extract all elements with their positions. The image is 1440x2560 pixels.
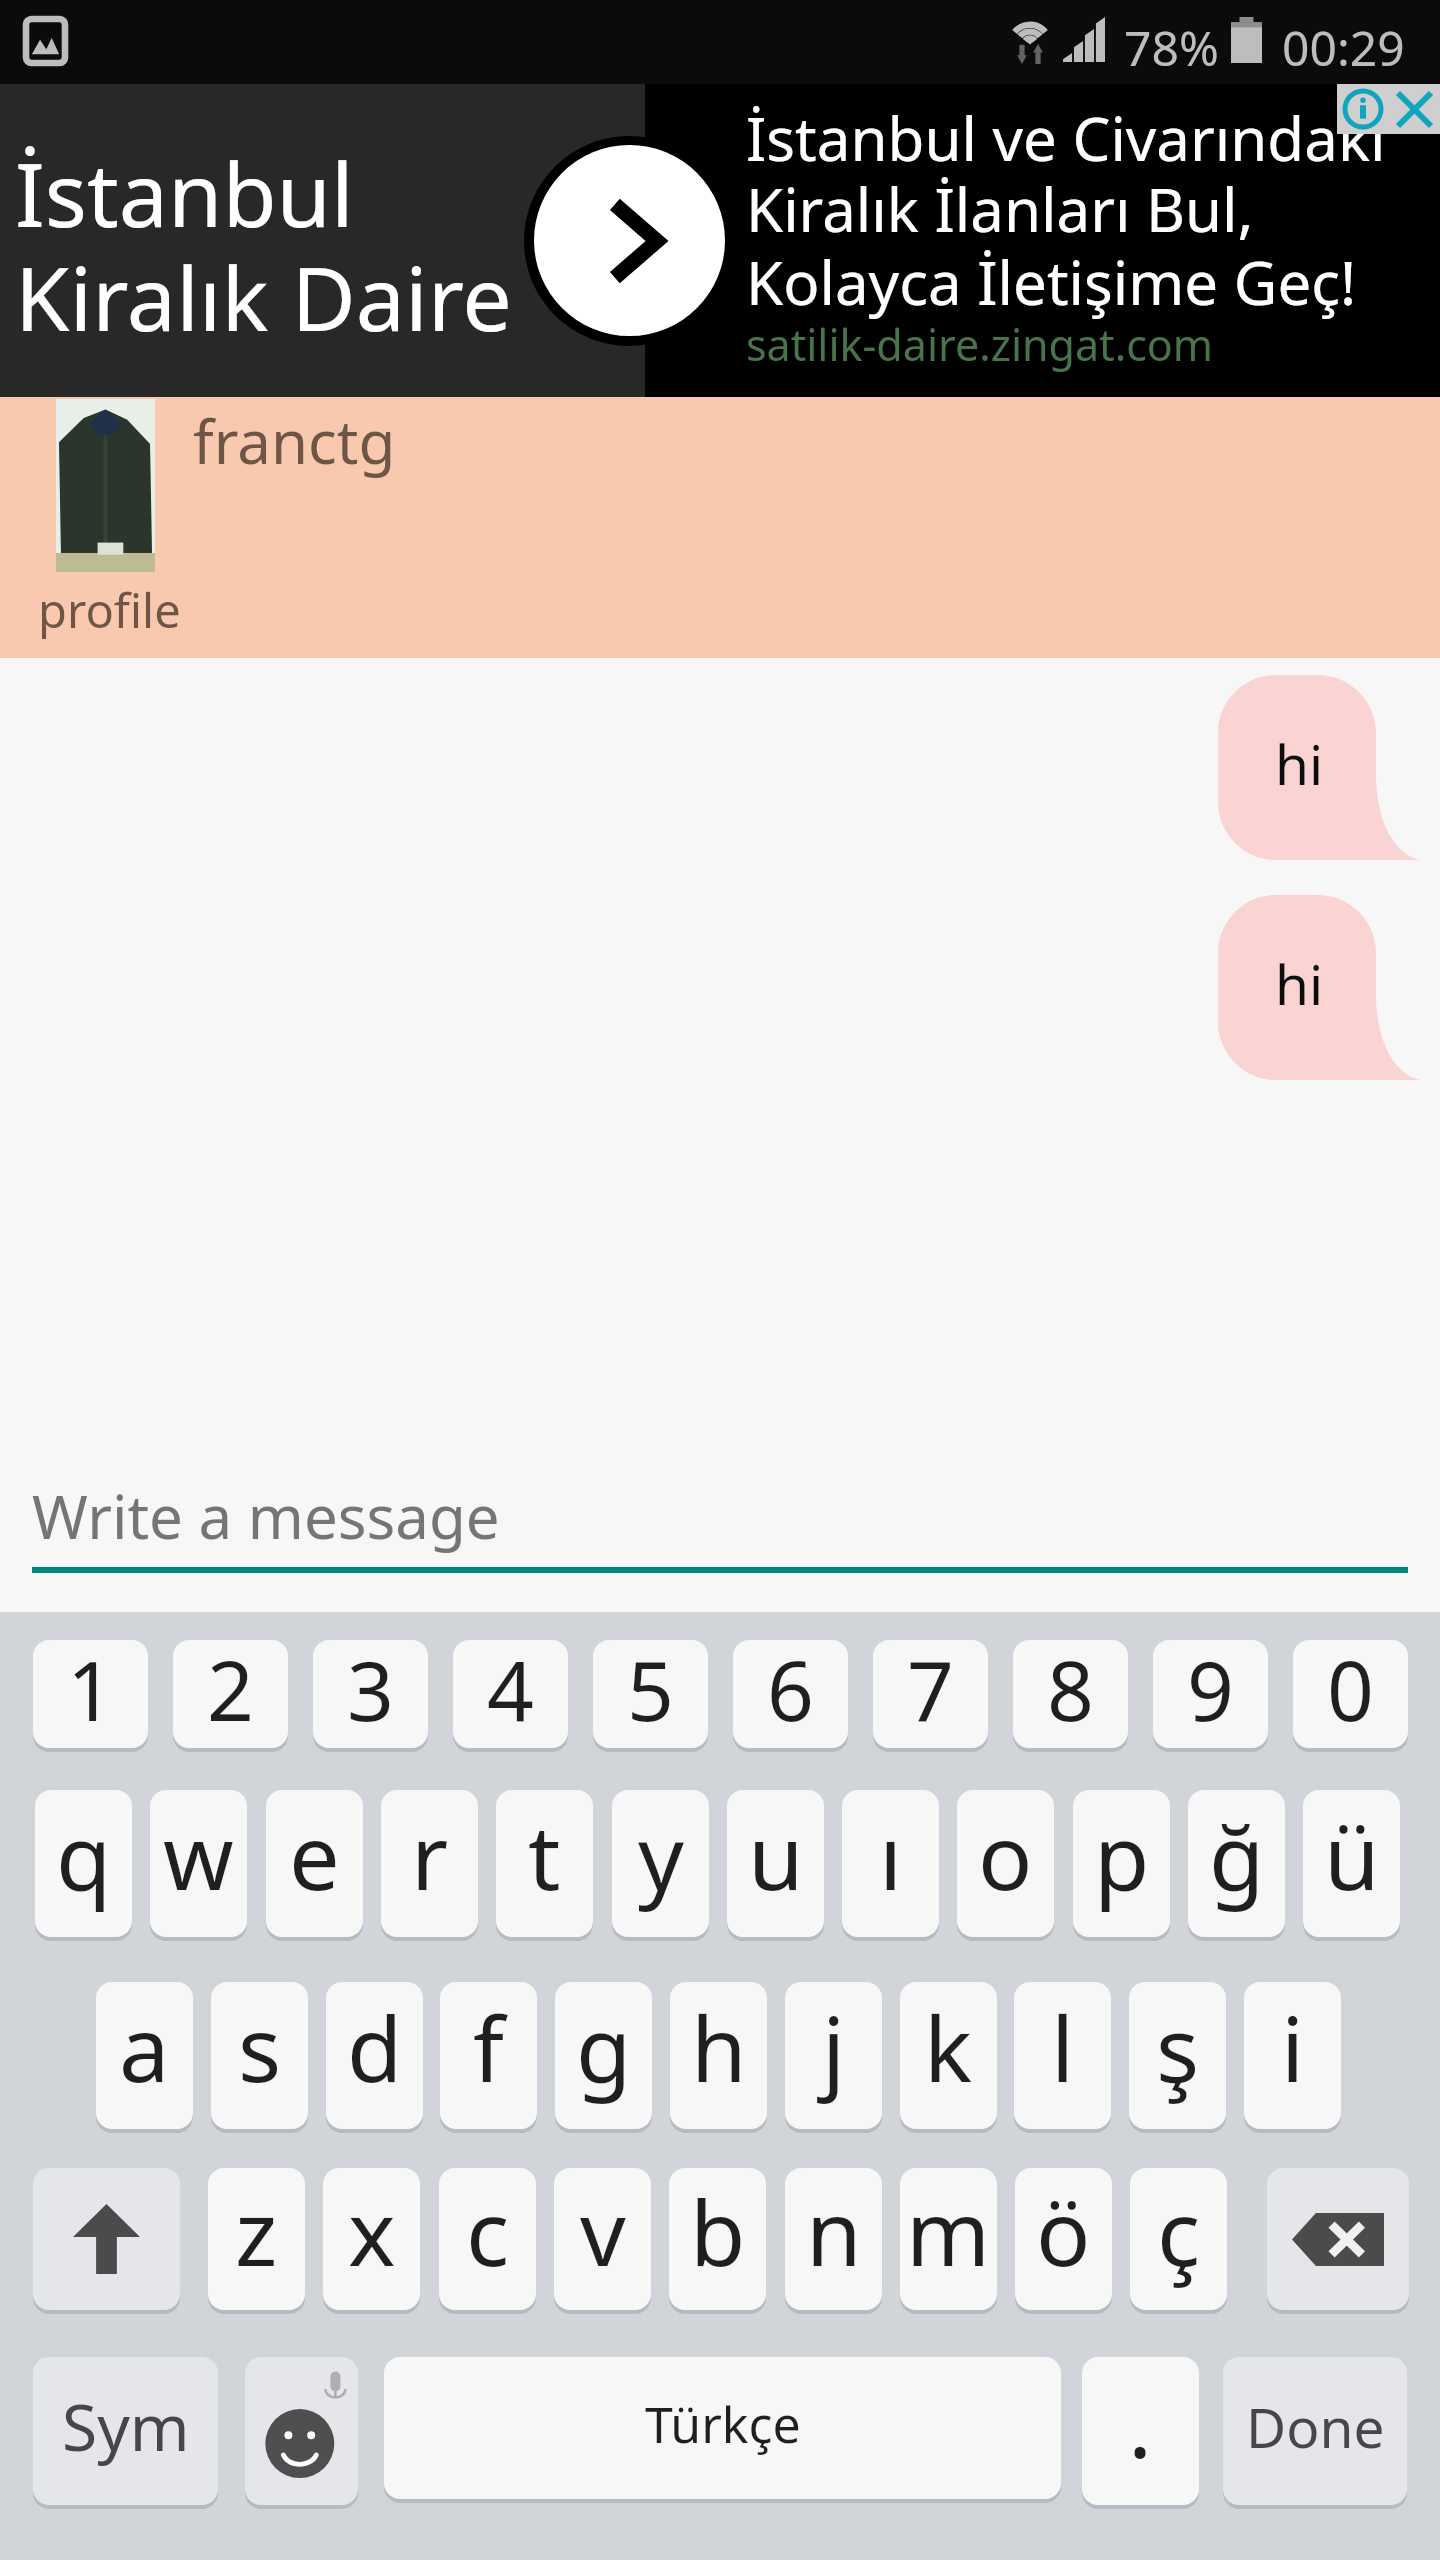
staticText: o bbox=[978, 1794, 1033, 1917]
button[interactable]: Backspace bbox=[1267, 2168, 1409, 2310]
staticText: franctg bbox=[193, 400, 396, 482]
staticText: g bbox=[576, 1986, 632, 2109]
staticText: Kiralık Daire bbox=[15, 237, 512, 357]
button[interactable]: m bbox=[900, 2168, 997, 2310]
button[interactable]: i bbox=[1244, 1982, 1341, 2129]
staticText: Done bbox=[1246, 2389, 1385, 2464]
button[interactable]: v bbox=[554, 2168, 651, 2310]
staticText: m bbox=[906, 2170, 991, 2293]
button[interactable]: f bbox=[440, 1982, 537, 2129]
button[interactable]: d bbox=[326, 1982, 423, 2129]
button[interactable]: 7 bbox=[873, 1640, 988, 1748]
button[interactable]: t bbox=[496, 1790, 593, 1937]
staticText: 1 bbox=[67, 1640, 114, 1741]
button[interactable]: franctg bbox=[0, 397, 1440, 658]
staticText: f bbox=[473, 1986, 504, 2109]
staticText: 6 bbox=[767, 1640, 814, 1741]
button[interactable]: hi bbox=[1218, 675, 1421, 860]
staticText: p bbox=[1094, 1794, 1150, 1917]
button[interactable]: p bbox=[1073, 1790, 1170, 1937]
staticText: hi bbox=[1275, 726, 1324, 801]
button[interactable]: İstanbul bbox=[0, 84, 1440, 397]
button[interactable]: hi bbox=[1218, 895, 1421, 1080]
button[interactable]: Write a message bbox=[0, 1452, 1440, 1612]
button[interactable]: Türkçe bbox=[384, 2357, 1061, 2499]
button[interactable]: 4 bbox=[453, 1640, 568, 1748]
staticText: 3 bbox=[347, 1640, 394, 1741]
staticText: ç bbox=[1157, 2170, 1201, 2293]
button[interactable]: ç bbox=[1130, 2168, 1227, 2310]
button[interactable]: l bbox=[1014, 1982, 1111, 2129]
staticText: u bbox=[748, 1794, 804, 1917]
button[interactable]: z bbox=[208, 2168, 305, 2310]
staticText: Kiralık İlanları Bul, bbox=[746, 168, 1254, 250]
button[interactable]: e bbox=[266, 1790, 363, 1937]
button[interactable]: n bbox=[785, 2168, 882, 2310]
button[interactable]: . bbox=[1082, 2357, 1199, 2505]
button[interactable]: 6 bbox=[733, 1640, 848, 1748]
button[interactable]: Ad info bbox=[1337, 84, 1389, 134]
button[interactable]: ş bbox=[1129, 1982, 1226, 2129]
staticText: Türkçe bbox=[645, 2390, 801, 2458]
staticText: ü bbox=[1324, 1794, 1380, 1917]
staticText: ö bbox=[1036, 2170, 1091, 2293]
button[interactable]: ğ bbox=[1188, 1790, 1285, 1937]
staticText: 5 bbox=[627, 1640, 674, 1741]
staticText: z bbox=[235, 2170, 278, 2293]
button[interactable]: Sym bbox=[33, 2357, 218, 2505]
staticText: i bbox=[1281, 1986, 1305, 2109]
staticText: v bbox=[580, 2170, 626, 2293]
button[interactable]: s bbox=[211, 1982, 308, 2129]
button[interactable]: 5 bbox=[593, 1640, 708, 1748]
button[interactable]: Emoji and voice input bbox=[245, 2357, 358, 2505]
staticText: c bbox=[466, 2170, 510, 2293]
button[interactable]: Done bbox=[1223, 2357, 1407, 2505]
button[interactable]: x bbox=[323, 2168, 420, 2310]
staticText: 9 bbox=[1187, 1640, 1234, 1741]
staticText: n bbox=[806, 2170, 862, 2293]
staticText: l bbox=[1051, 1986, 1075, 2109]
staticText: 0 bbox=[1327, 1640, 1374, 1741]
staticText: e bbox=[289, 1794, 340, 1917]
staticText: . bbox=[1128, 2362, 1153, 2485]
staticText: Sym bbox=[62, 2383, 190, 2470]
button[interactable]: q bbox=[35, 1790, 132, 1937]
button[interactable]: ı bbox=[842, 1790, 939, 1937]
staticText: profile bbox=[38, 578, 181, 642]
button[interactable]: o bbox=[957, 1790, 1054, 1937]
staticText: y bbox=[638, 1794, 684, 1917]
button[interactable]: w bbox=[150, 1790, 247, 1937]
staticText: 78% bbox=[1124, 15, 1219, 80]
button[interactable]: g bbox=[555, 1982, 652, 2129]
button[interactable]: y bbox=[612, 1790, 709, 1937]
button[interactable]: ü bbox=[1303, 1790, 1400, 1937]
button[interactable]: j bbox=[785, 1982, 882, 2129]
staticText: ş bbox=[1156, 1986, 1200, 2109]
button[interactable]: 2 bbox=[173, 1640, 288, 1748]
button[interactable]: k bbox=[900, 1982, 997, 2129]
staticText: ğ bbox=[1209, 1794, 1265, 1917]
button[interactable]: 1 bbox=[33, 1640, 148, 1748]
staticText: q bbox=[56, 1794, 112, 1917]
button[interactable]: r bbox=[381, 1790, 478, 1937]
staticText: w bbox=[163, 1794, 234, 1917]
button[interactable]: u bbox=[727, 1790, 824, 1937]
button[interactable]: ö bbox=[1015, 2168, 1112, 2310]
staticText: Kolayca İletişime Geç! bbox=[746, 241, 1357, 323]
button[interactable]: 0 bbox=[1293, 1640, 1408, 1748]
staticText: İstanbul ve Civarındaki bbox=[746, 97, 1386, 179]
button[interactable]: 9 bbox=[1153, 1640, 1268, 1748]
button[interactable]: Close ad bbox=[1389, 84, 1440, 134]
button[interactable]: c bbox=[439, 2168, 536, 2310]
button[interactable]: b bbox=[669, 2168, 766, 2310]
staticText: 4 bbox=[487, 1640, 534, 1741]
button[interactable]: 3 bbox=[313, 1640, 428, 1748]
staticText: 7 bbox=[907, 1640, 954, 1741]
button[interactable]: h bbox=[670, 1982, 767, 2129]
button[interactable]: Shift bbox=[33, 2168, 180, 2310]
staticText: x bbox=[348, 2170, 396, 2293]
staticText: h bbox=[691, 1986, 747, 2109]
staticText: k bbox=[924, 1986, 973, 2109]
button[interactable]: 8 bbox=[1013, 1640, 1128, 1748]
button[interactable]: a bbox=[96, 1982, 193, 2129]
